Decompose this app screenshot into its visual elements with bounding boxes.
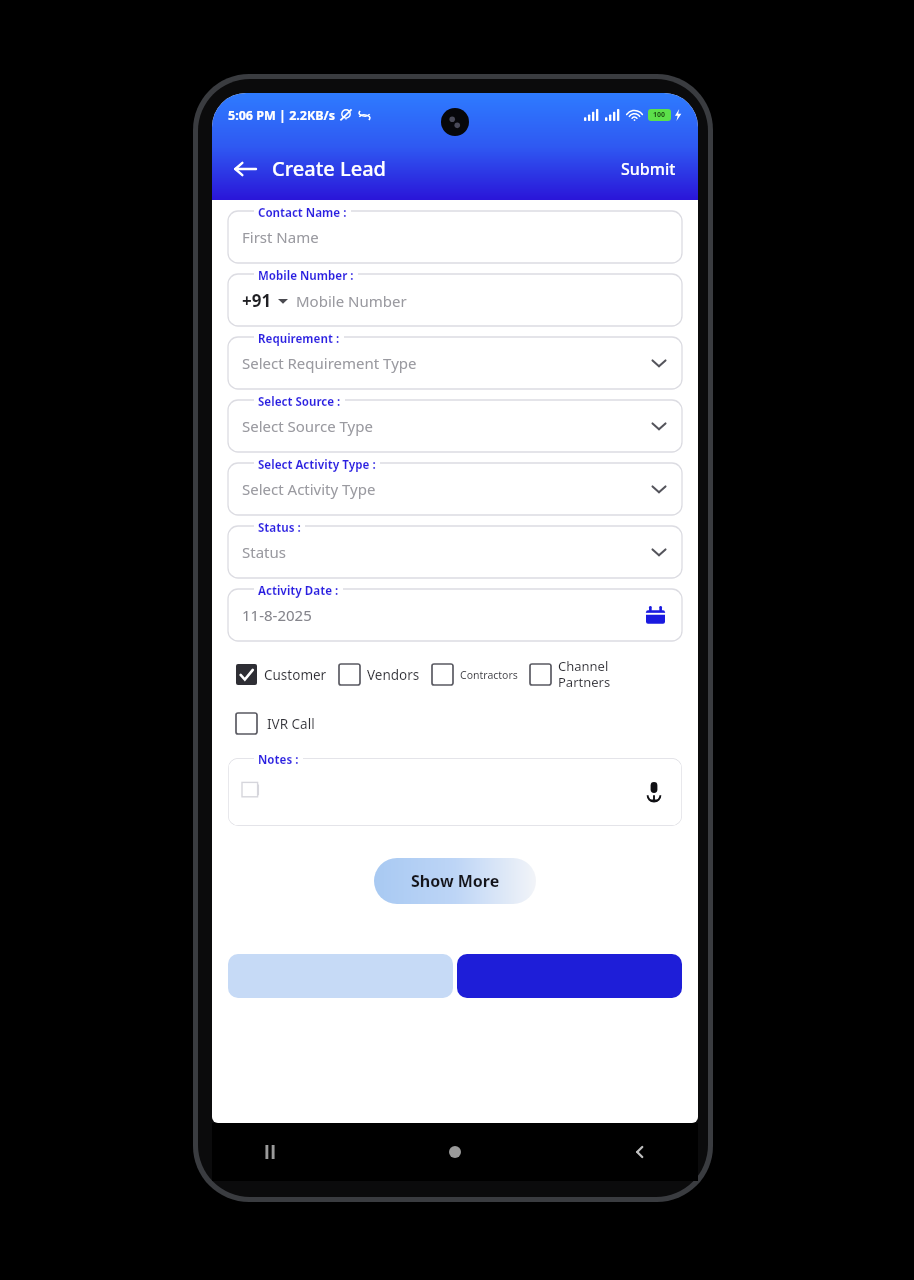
staticText: Status — [242, 542, 286, 562]
button[interactable]: Contractors — [432, 664, 518, 685]
button[interactable]: Status — [228, 526, 682, 578]
staticText: Show More — [411, 870, 500, 892]
staticText: Submit — [621, 158, 676, 180]
button[interactable]: First Name — [228, 211, 682, 263]
staticText: Customer — [264, 666, 327, 684]
button[interactable]: Back — [228, 152, 262, 186]
staticText: Select Activity Type — [242, 479, 376, 499]
staticText: Notes : — [258, 752, 299, 768]
button[interactable]: IVR Call — [236, 713, 315, 734]
button[interactable]: Back — [622, 1134, 658, 1170]
button[interactable]: Show More — [374, 858, 536, 904]
staticText: IVR Call — [267, 715, 315, 733]
button[interactable]: Select Activity Type — [228, 463, 682, 515]
button[interactable]: 11-8-2025 — [228, 589, 682, 641]
staticText: Vendors — [367, 666, 420, 684]
staticText: Channel Partners — [558, 657, 611, 691]
button[interactable]: Select Source Type — [228, 400, 682, 452]
button[interactable] — [228, 954, 453, 998]
staticText: Select Source Type — [242, 416, 373, 436]
staticText: 11-8-2025 — [242, 605, 312, 625]
button[interactable]: Submit — [615, 152, 682, 186]
staticText: First Name — [242, 227, 319, 247]
button[interactable]: Voice input — [228, 758, 682, 826]
button[interactable] — [457, 954, 682, 998]
staticText: Activity Date : — [258, 583, 339, 599]
staticText: Mobile Number — [296, 291, 407, 311]
staticText: 5:06 PM | 2.2KB/s — [228, 107, 336, 124]
staticText: 100 — [653, 110, 666, 120]
staticText: Select Requirement Type — [242, 353, 417, 373]
button[interactable]: Channel Partners — [530, 657, 611, 691]
button[interactable]: Voice input — [640, 778, 668, 806]
button[interactable]: Pick date — [642, 602, 668, 628]
staticText: Create Lead — [272, 155, 387, 182]
staticText: Select Activity Type : — [258, 457, 376, 473]
staticText: Mobile Number : — [258, 268, 354, 284]
staticText: Contact Name : — [258, 205, 347, 221]
button[interactable]: Select Requirement Type — [228, 337, 682, 389]
button[interactable]: Recents — [252, 1134, 288, 1170]
button[interactable]: Vendors — [339, 664, 420, 685]
staticText: Contractors — [460, 668, 518, 682]
button[interactable]: Home — [437, 1134, 473, 1170]
staticText: Select Source : — [258, 394, 341, 410]
staticText: +91 — [242, 289, 272, 312]
button[interactable]: Customer — [236, 664, 327, 685]
staticText: Requirement : — [258, 331, 340, 347]
staticText: Status : — [258, 520, 301, 536]
button[interactable]: +91 — [228, 274, 682, 326]
